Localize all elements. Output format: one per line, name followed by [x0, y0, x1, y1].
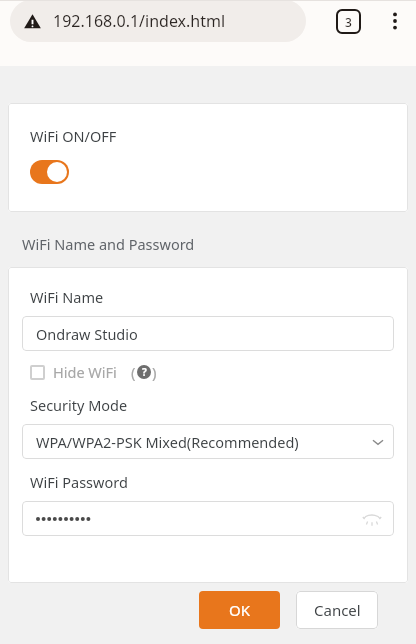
staticText: ( — [131, 362, 136, 382]
button[interactable]: More options — [382, 8, 408, 34]
button[interactable]: OK — [199, 591, 280, 629]
staticText: Security Mode — [30, 395, 128, 415]
staticText: WPA/WPA2-PSK Mixed(Recommended) — [36, 432, 299, 452]
staticText: WiFi Name — [30, 287, 104, 307]
staticText: OK — [229, 600, 251, 620]
staticText: WiFi Password — [30, 472, 128, 492]
button[interactable]: Cancel — [296, 591, 378, 629]
button[interactable]: 192.168.0.1/index.html — [10, 0, 306, 42]
button[interactable]: Show password — [360, 507, 384, 531]
staticText: Cancel — [314, 600, 361, 620]
button[interactable]: Hide WiFi — [30, 362, 117, 382]
button[interactable]: Show password — [22, 501, 394, 536]
staticText: WiFi ON/OFF — [30, 126, 117, 146]
button[interactable]: WPA/WPA2-PSK Mixed(Recommended) — [22, 424, 394, 459]
button[interactable]: Tabs — [335, 8, 362, 35]
staticText: WiFi Name and Password — [22, 234, 195, 254]
staticText: ) — [152, 362, 157, 382]
staticText: Hide WiFi — [53, 362, 117, 382]
staticText: 192.168.0.1/index.html — [53, 10, 226, 32]
staticText: 3 — [345, 14, 352, 30]
staticText: ? — [142, 365, 147, 379]
staticText: Ondraw Studio — [36, 324, 138, 344]
button[interactable]: Ondraw Studio — [22, 316, 394, 351]
button[interactable]: Help — [131, 362, 157, 382]
button[interactable]: WiFi toggle — [30, 160, 69, 184]
